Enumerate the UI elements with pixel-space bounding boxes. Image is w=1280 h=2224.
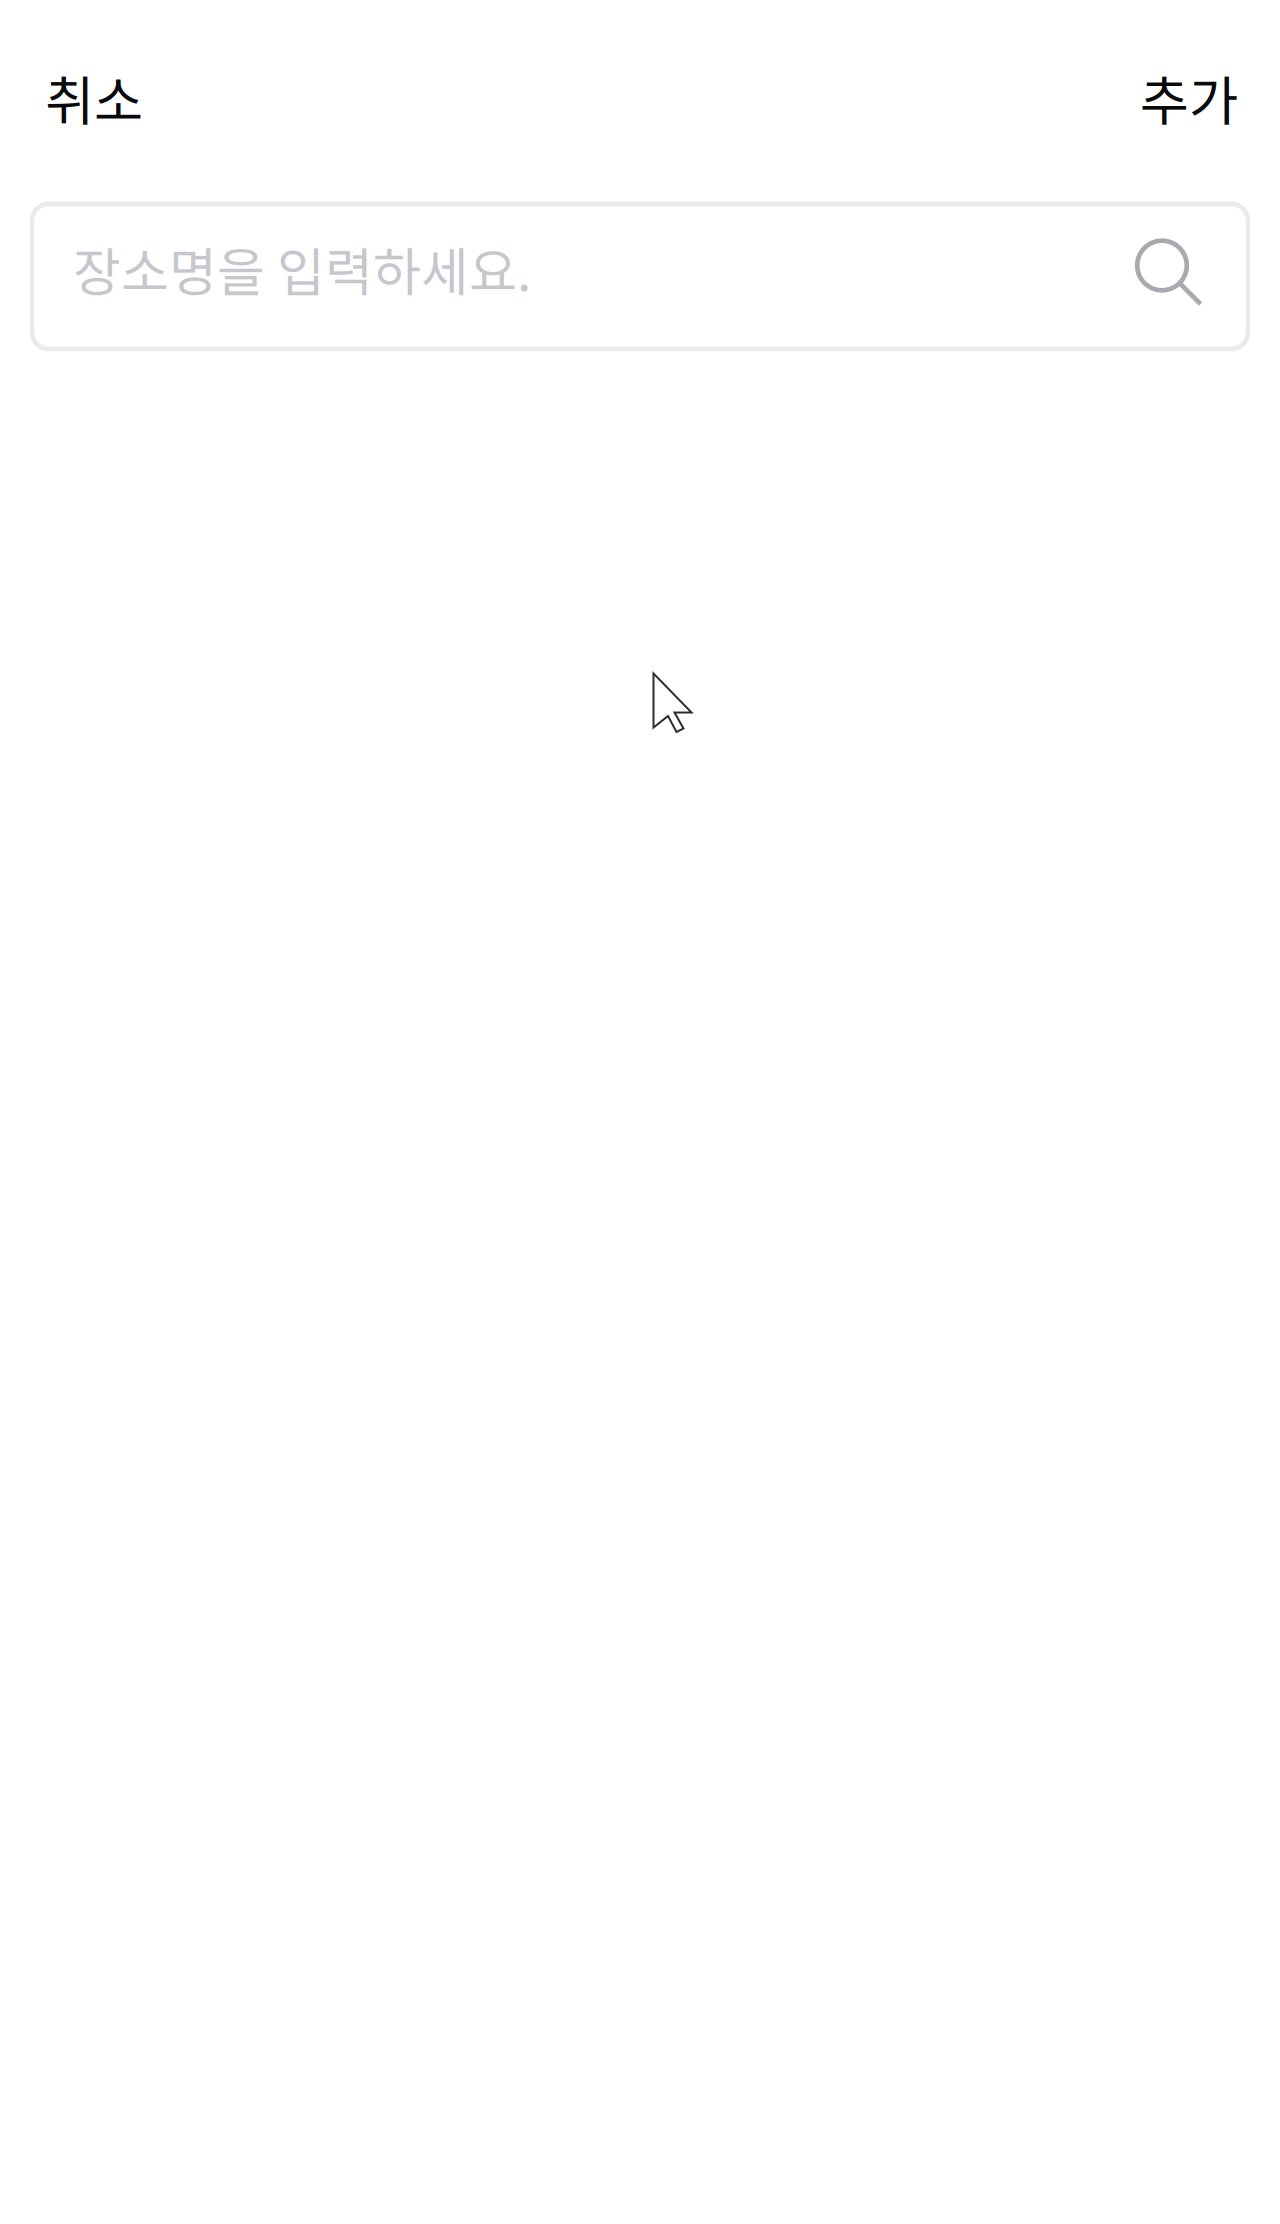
staticText: 취소 xyxy=(45,59,143,136)
button[interactable]: 추가 xyxy=(1112,45,1280,150)
button[interactable]: 취소 xyxy=(0,45,171,150)
button[interactable]: 장소명을 입력하세요. xyxy=(32,204,1248,349)
staticText: 장소명을 입력하세요. xyxy=(73,231,531,306)
staticText: 추가 xyxy=(1140,59,1238,136)
